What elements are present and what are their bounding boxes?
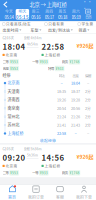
staticText: ¥933 xyxy=(56,66,64,71)
staticText: 20:54 xyxy=(57,106,66,111)
staticText: G105次 xyxy=(2,146,13,151)
button[interactable]: 我的订单 xyxy=(24,185,48,199)
button[interactable]: 只看高铁/动车 xyxy=(2,21,31,27)
staticText: 18:37 xyxy=(71,89,80,94)
staticText: 全程 5h36m xyxy=(23,146,41,151)
staticText: 09:20 xyxy=(2,152,25,163)
staticText: ¥553 xyxy=(10,170,18,175)
button[interactable]: 我的下单 xyxy=(72,185,96,199)
staticText: 周三 xyxy=(32,8,40,14)
staticText: 2分 xyxy=(85,114,91,119)
button[interactable]: 客服 xyxy=(48,185,72,199)
staticText: 经停 xyxy=(2,73,10,78)
button[interactable]: 周五 xyxy=(56,9,69,19)
staticText: 2分 xyxy=(85,89,91,94)
staticText: -- xyxy=(74,131,76,136)
staticText: 05:16 xyxy=(31,14,40,20)
staticText: 22:58 xyxy=(41,41,64,52)
staticText: 周四 xyxy=(45,8,53,14)
button[interactable]: 明天 xyxy=(16,9,29,19)
staticText: 收起经停 xyxy=(40,138,56,143)
staticText: 05:15 xyxy=(16,14,29,20)
staticText: ¥553 xyxy=(10,59,18,64)
staticText: ¥933 xyxy=(40,59,48,64)
staticText: 二等 xyxy=(2,59,8,64)
staticText: 北京南 xyxy=(7,80,19,86)
staticText: 无座 xyxy=(2,66,8,71)
staticText: 2分 xyxy=(85,97,91,103)
staticText: ¥926起 xyxy=(76,42,93,49)
staticText: 苏州北 xyxy=(7,122,19,128)
button[interactable]: 首页 xyxy=(0,185,24,199)
staticText: 北京南 xyxy=(5,52,17,57)
staticText: 我的订单 xyxy=(28,194,44,199)
staticText: 商务 xyxy=(62,170,68,175)
staticText: 21:41 xyxy=(57,122,66,128)
staticText: 4h54m xyxy=(27,42,38,46)
staticText: 14:56 xyxy=(41,152,64,163)
button[interactable]: 今天 xyxy=(2,9,16,19)
staticText: 18:04 xyxy=(71,80,80,86)
staticText: 19:26 xyxy=(57,97,66,103)
staticText: 停留 xyxy=(85,73,91,78)
button[interactable]: 返回 xyxy=(0,0,14,8)
staticText: 车型 xyxy=(31,27,39,33)
staticText: 05:14 xyxy=(4,14,13,20)
button[interactable]: 学生票 xyxy=(78,21,93,27)
staticText: 只看有票 xyxy=(48,21,64,27)
button[interactable]: 出发时间 xyxy=(0,27,24,33)
staticText: 上海虹桥 xyxy=(44,163,60,168)
staticText: ¥933 xyxy=(40,170,48,175)
staticText: -- xyxy=(60,80,62,86)
staticText: 到达 xyxy=(58,73,64,78)
staticText: 南京南 xyxy=(7,105,19,111)
staticText: 常州北 xyxy=(7,114,19,120)
staticText: 18:35 xyxy=(57,89,66,94)
staticText: 05:17 xyxy=(45,14,54,20)
staticText: 出发/到达站 xyxy=(48,27,70,33)
button[interactable]: 出发/到达站 xyxy=(48,27,72,33)
staticText: 客服 xyxy=(56,194,64,199)
staticText: 特等 xyxy=(48,66,54,71)
button[interactable]: 周四 xyxy=(42,9,56,19)
staticText: 二等 xyxy=(2,170,8,175)
staticText: 2分 xyxy=(85,122,91,128)
staticText: 筛选 xyxy=(78,27,86,33)
staticText: 出发时间 xyxy=(3,27,19,33)
button[interactable]: 只看有票 xyxy=(45,21,64,27)
staticText: 北京 → 上海虹桥 xyxy=(29,1,66,8)
staticText: 周六 xyxy=(72,8,80,14)
staticText: ¥553 xyxy=(10,66,18,71)
staticText: 日历 xyxy=(85,15,91,19)
staticText: -- xyxy=(87,80,89,86)
staticText: 5h36m xyxy=(27,153,38,157)
staticText: 20:56 xyxy=(71,106,80,111)
button[interactable]: 更多 xyxy=(82,0,96,8)
button[interactable]: 日历 xyxy=(83,9,94,19)
staticText: 学生票 xyxy=(81,21,93,27)
button[interactable]: G103次 xyxy=(0,34,96,57)
staticText: 今天 xyxy=(5,8,13,14)
button[interactable]: 收起经停 xyxy=(0,138,96,143)
staticText: ¥1748 xyxy=(69,170,79,175)
staticText: 一等 xyxy=(32,170,38,175)
button[interactable]: 周三 xyxy=(29,9,42,19)
staticText: ••• xyxy=(82,0,92,11)
staticText: G103次 xyxy=(2,35,13,40)
staticText: 我的下单 xyxy=(76,194,92,199)
staticText: 21:26 xyxy=(71,114,80,119)
staticText: 21:24 xyxy=(57,114,66,119)
staticText: 首页 xyxy=(8,194,16,199)
staticText: 济南西 xyxy=(7,97,19,103)
staticText: 周五 xyxy=(59,8,67,14)
staticText: 一等 xyxy=(32,59,38,64)
button[interactable]: 筛选 xyxy=(72,27,96,33)
button[interactable]: 车型 xyxy=(24,27,48,33)
staticText: 19:28 xyxy=(71,97,80,103)
button[interactable]: 周六 xyxy=(69,9,83,19)
staticText: 北京南 xyxy=(5,163,17,168)
staticText: ¥1748 xyxy=(69,59,79,64)
staticText: 05:18 xyxy=(58,14,67,20)
button[interactable]: G105次 xyxy=(0,145,96,168)
staticText: 05:19 xyxy=(71,14,80,20)
